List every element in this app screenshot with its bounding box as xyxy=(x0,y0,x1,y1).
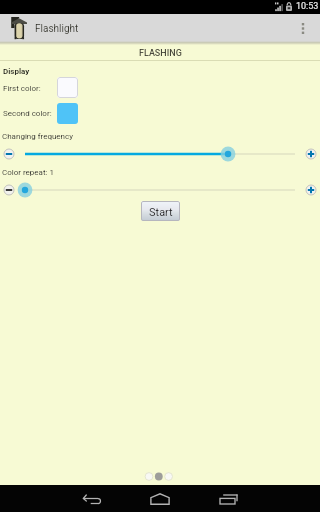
staticText: Changing frequency xyxy=(2,132,73,141)
button[interactable]: Back xyxy=(74,487,110,511)
staticText: Start xyxy=(149,206,173,219)
button[interactable]: Increase xyxy=(303,182,319,198)
staticText: Display xyxy=(3,67,30,76)
button[interactable]: More options xyxy=(291,14,315,43)
button[interactable]: Second color xyxy=(57,103,78,124)
staticText: 10:53 xyxy=(296,1,319,12)
button[interactable]: Decrease xyxy=(1,146,17,162)
staticText: First color: xyxy=(3,84,41,93)
button[interactable]: Increase xyxy=(303,146,319,162)
staticText: Color repeat: 1 xyxy=(2,168,54,177)
button[interactable]: Home xyxy=(142,488,178,512)
button[interactable]: First color xyxy=(57,77,78,98)
button[interactable]: Decrease xyxy=(1,182,17,198)
button[interactable]: FLASHING xyxy=(0,45,320,62)
staticText: Flashlight xyxy=(35,23,79,35)
staticText: FLASHING xyxy=(139,48,182,59)
staticText: Second color: xyxy=(3,109,52,118)
button[interactable]: Start xyxy=(141,201,180,221)
button[interactable]: Recents xyxy=(211,488,247,512)
